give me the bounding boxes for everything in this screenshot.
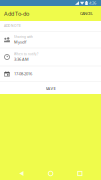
button[interactable]: CANCEL	[78, 9, 95, 18]
staticText: Sharing with	[14, 35, 33, 39]
staticText: 17-08-2016	[14, 71, 32, 76]
staticText: When to notify?	[14, 52, 38, 56]
staticText: ADD NOTE	[4, 23, 21, 28]
staticText: Add To-do	[4, 10, 29, 17]
staticText: Myself	[14, 39, 26, 45]
staticText: CANCEL	[80, 11, 93, 16]
staticText: SAVE	[45, 85, 55, 91]
button[interactable]: Back	[13, 168, 29, 179]
button[interactable]: Sharing with	[0, 32, 101, 48]
button[interactable]: 17-08-2016	[0, 66, 101, 81]
staticText: 3:36 AM	[14, 56, 29, 62]
button[interactable]: ADD NOTE	[0, 20, 101, 31]
button[interactable]: Home	[42, 168, 58, 179]
button[interactable]: SAVE	[0, 82, 101, 95]
staticText: 4:26	[89, 0, 96, 6]
button[interactable]: Recent apps	[72, 168, 88, 179]
button[interactable]: When to notify?	[0, 48, 101, 66]
